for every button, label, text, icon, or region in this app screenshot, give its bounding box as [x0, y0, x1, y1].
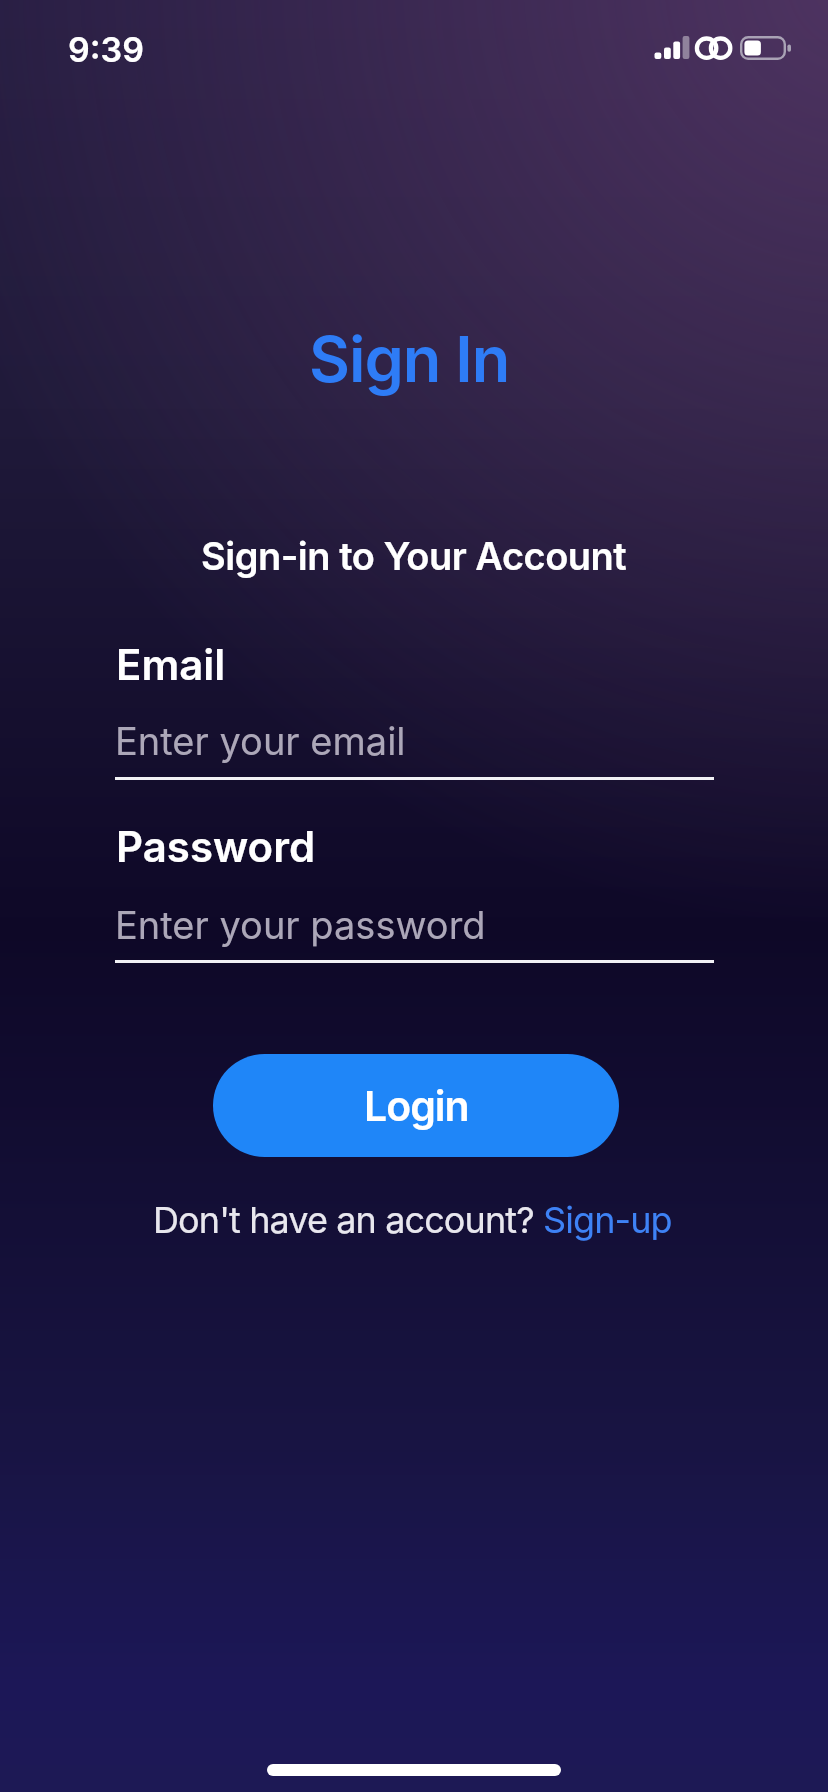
button[interactable]: Enter your password — [115, 884, 714, 963]
button[interactable]: Login — [213, 1054, 619, 1157]
staticText: Enter your password — [115, 902, 486, 948]
staticText: Don't have an account? — [153, 1198, 543, 1242]
button[interactable]: Enter your email — [115, 700, 714, 780]
staticText: Sign In — [309, 321, 510, 397]
staticText: Sign-in to Your Account — [201, 533, 627, 579]
staticText: Password — [116, 821, 316, 872]
staticText: 9:39 — [68, 29, 144, 70]
staticText: Enter your email — [115, 718, 406, 764]
staticText: Login — [364, 1081, 469, 1131]
staticText: Email — [116, 639, 226, 690]
button[interactable]: Sign-up — [543, 1198, 672, 1242]
